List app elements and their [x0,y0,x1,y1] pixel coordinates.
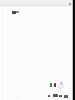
button[interactable] [50,83,52,87]
button[interactable] [64,95,68,98]
button[interactable] [48,95,50,97]
button[interactable] [54,83,56,87]
button[interactable] [53,94,58,97]
button[interactable] [59,95,62,97]
button[interactable] [58,83,64,89]
button[interactable] [12,11,19,14]
